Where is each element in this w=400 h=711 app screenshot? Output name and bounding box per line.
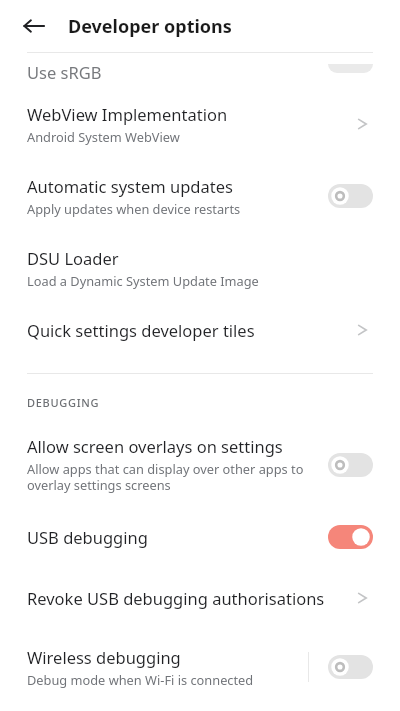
button[interactable]: Quick settings developer tiles <box>0 319 400 341</box>
button[interactable]: Wireless debugging <box>0 646 400 688</box>
button[interactable]: Toggle off <box>328 453 373 477</box>
button[interactable]: Revoke USB debugging authorisations <box>0 587 400 609</box>
staticText: Debug mode when Wi-Fi is connected <box>27 671 254 688</box>
button[interactable]: DSU Loader <box>0 247 400 289</box>
staticText: Android System WebView <box>27 128 180 145</box>
staticText: DEBUGGING <box>27 395 100 410</box>
staticText: Allow apps that can display over other a… <box>27 460 318 494</box>
button[interactable]: Automatic system updates <box>0 175 400 217</box>
button[interactable]: Use sRGB <box>0 53 400 83</box>
staticText: Apply updates when device restarts <box>27 200 241 217</box>
button[interactable]: WebView Implementation <box>0 103 400 145</box>
staticText: Developer options <box>68 14 232 39</box>
button[interactable]: Back <box>14 6 54 46</box>
staticText: DSU Loader <box>27 247 119 269</box>
staticText: WebView Implementation <box>27 103 228 125</box>
button[interactable]: Allow screen overlays on settings <box>0 435 400 494</box>
staticText: Load a Dynamic System Update Image <box>27 272 259 289</box>
staticText: Use sRGB <box>27 61 102 83</box>
staticText: Revoke USB debugging authorisations <box>27 587 325 609</box>
staticText: USB debugging <box>27 526 148 548</box>
button[interactable]: Toggle off <box>328 184 373 208</box>
staticText: Wireless debugging <box>27 646 181 668</box>
staticText: Allow screen overlays on settings <box>27 435 283 457</box>
staticText: Automatic system updates <box>27 175 233 197</box>
staticText: Quick settings developer tiles <box>27 319 255 341</box>
button[interactable]: Toggle on <box>328 525 373 549</box>
button[interactable]: Toggle off <box>328 655 373 679</box>
button[interactable]: USB debugging <box>0 525 400 549</box>
